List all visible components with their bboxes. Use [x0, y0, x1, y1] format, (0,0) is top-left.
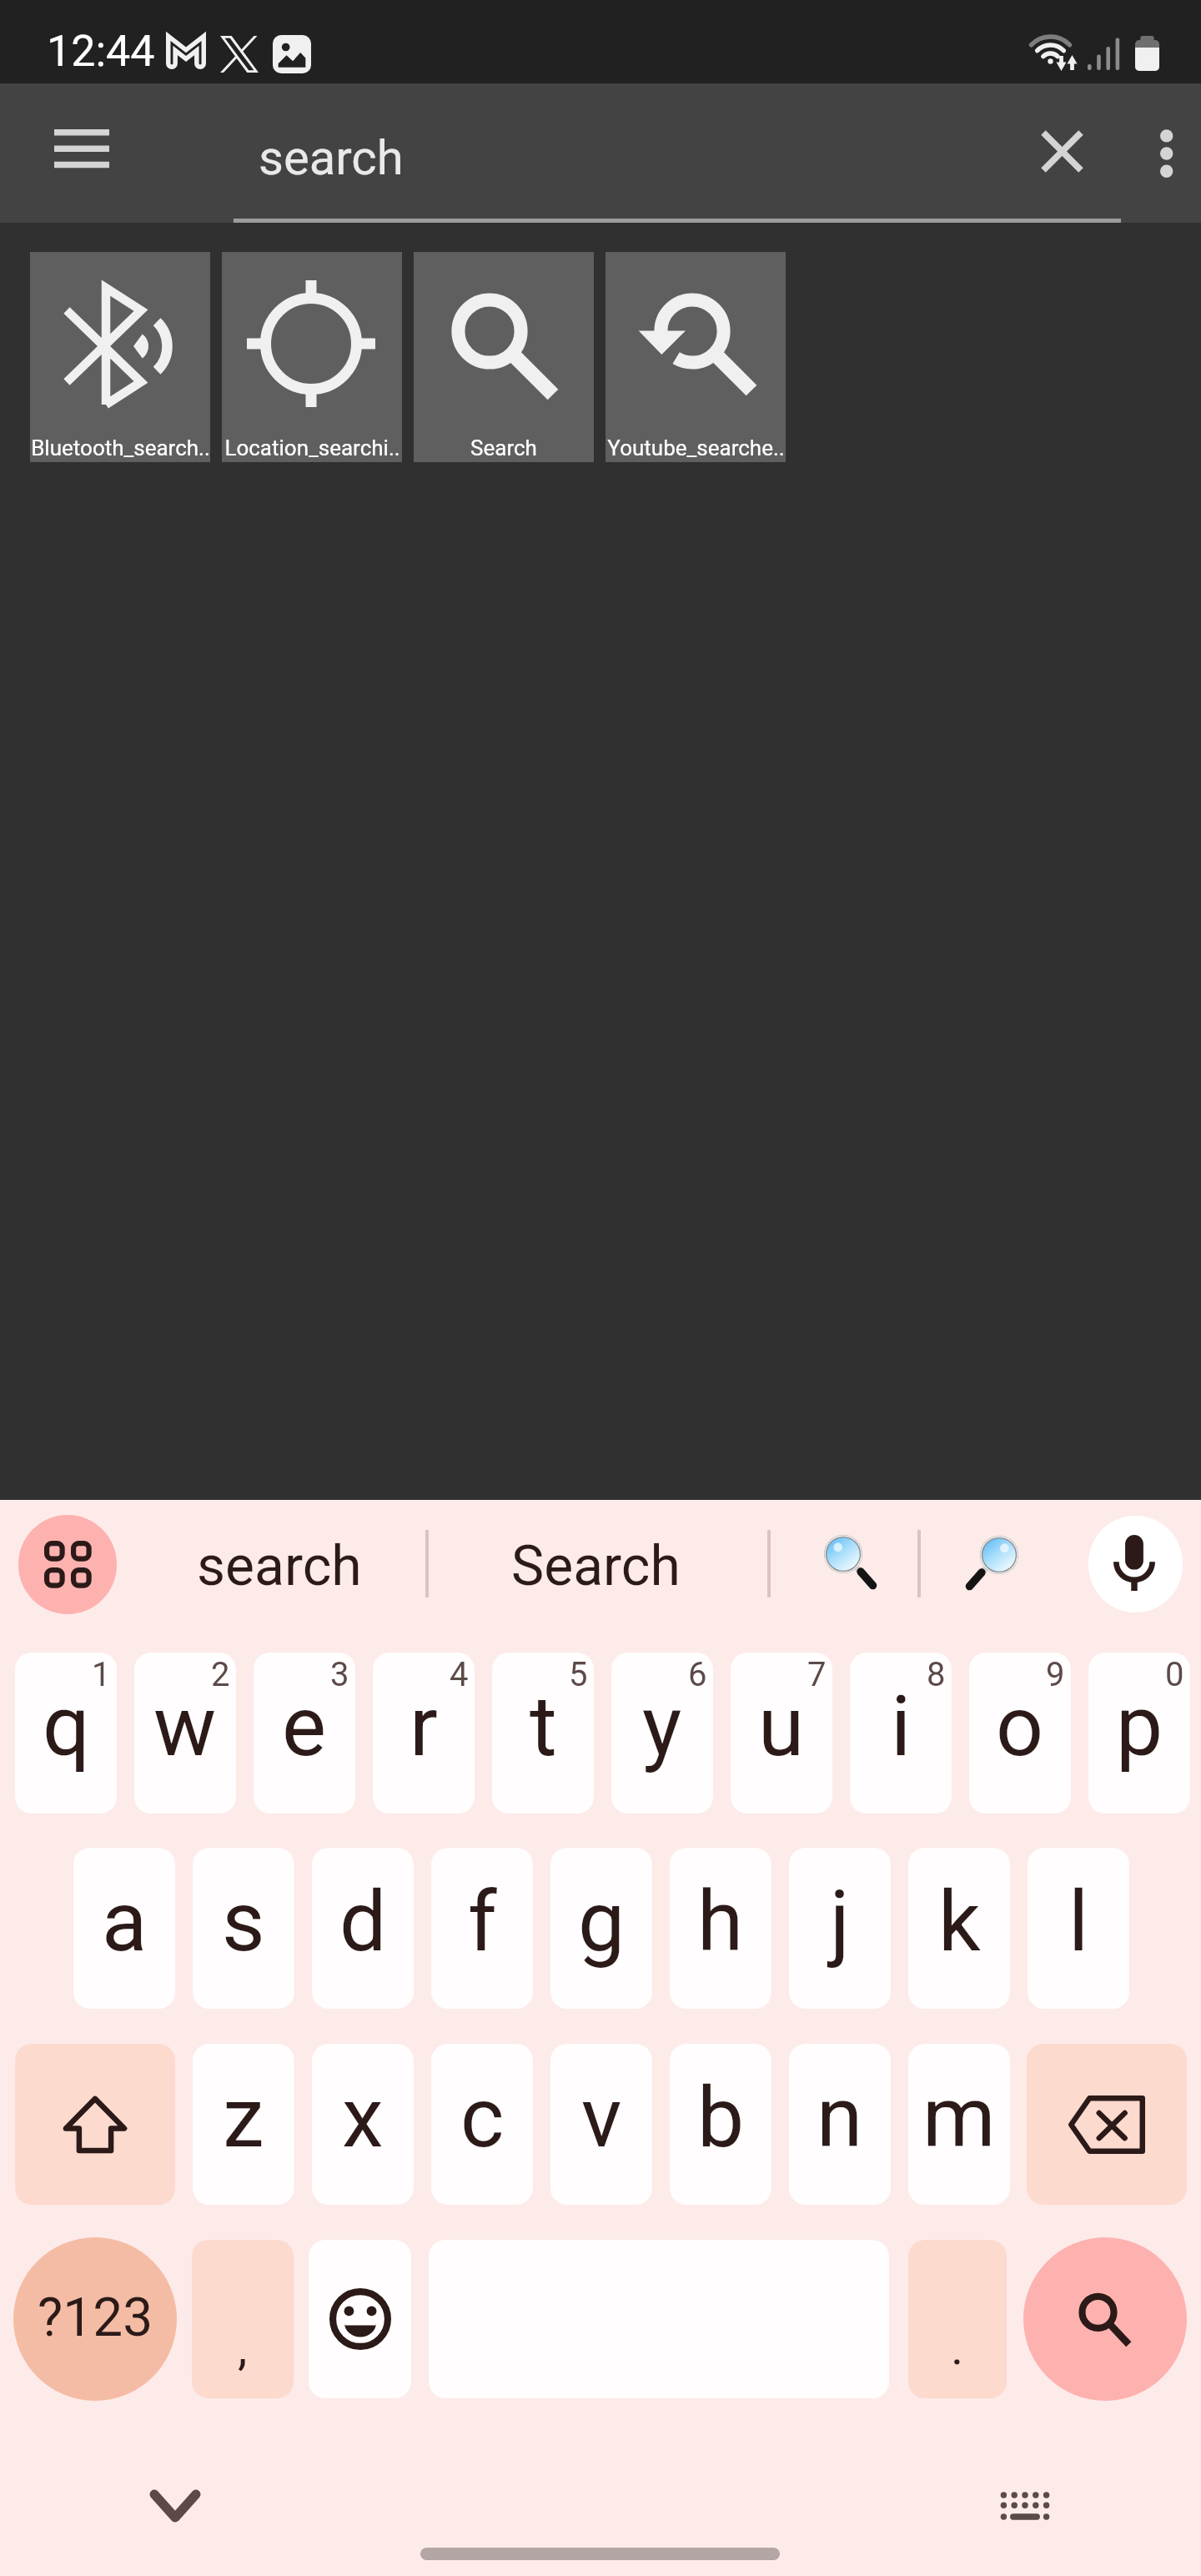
button[interactable]: Search suggestion — [792, 1512, 896, 1616]
button[interactable]: p — [1088, 1653, 1190, 1814]
staticText: 12:44 — [47, 26, 155, 77]
staticText: search — [259, 129, 404, 186]
button[interactable]: h — [670, 1848, 771, 2009]
button[interactable]: Emoji — [309, 2240, 411, 2398]
staticText: d — [339, 1873, 387, 1970]
staticText: 6 — [688, 1655, 707, 1694]
staticText: z — [223, 2069, 264, 2166]
staticText: u — [758, 1678, 805, 1775]
staticText: Search — [511, 1534, 681, 1598]
button[interactable]: o — [969, 1653, 1071, 1814]
button[interactable]: , — [192, 2240, 294, 2398]
staticText: 4 — [450, 1655, 469, 1694]
staticText: c — [460, 2069, 505, 2166]
staticText: i — [891, 1678, 912, 1775]
button[interactable]: search — [234, 96, 1018, 213]
staticText: . — [951, 2319, 964, 2376]
button[interactable]: Shift — [15, 2044, 175, 2205]
button[interactable]: q — [15, 1653, 117, 1814]
staticText: 0 — [1165, 1655, 1184, 1694]
staticText: Bluetooth_search.. — [31, 435, 210, 460]
staticText: 8 — [927, 1655, 946, 1694]
button[interactable]: Location_searchi.. — [222, 252, 402, 462]
button[interactable]: n — [789, 2044, 891, 2205]
button[interactable]: search — [133, 1502, 425, 1627]
staticText: y — [642, 1678, 682, 1775]
button[interactable]: Clear search — [1022, 111, 1103, 193]
staticText: search — [197, 1534, 362, 1598]
button[interactable]: v — [550, 2044, 652, 2205]
staticText: Youtube_searche.. — [607, 435, 785, 460]
button[interactable]: Search — [414, 252, 594, 462]
staticText: a — [102, 1873, 148, 1970]
staticText: x — [342, 2069, 384, 2166]
button[interactable]: Change keyboard — [975, 2456, 1075, 2556]
button[interactable]: f — [431, 1848, 533, 2009]
button[interactable]: Voice input — [1088, 1516, 1183, 1613]
button[interactable]: m — [908, 2044, 1010, 2205]
staticText: 7 — [807, 1655, 827, 1694]
staticText: 9 — [1046, 1655, 1065, 1694]
button[interactable]: Backspace — [1027, 2044, 1187, 2205]
staticText: l — [1068, 1873, 1089, 1970]
staticText: h — [697, 1873, 744, 1970]
button[interactable]: t — [492, 1653, 594, 1814]
button[interactable]: w — [134, 1653, 236, 1814]
button[interactable]: b — [670, 2044, 771, 2205]
button[interactable]: c — [431, 2044, 533, 2205]
button[interactable]: l — [1028, 1848, 1129, 2009]
staticText: r — [410, 1678, 438, 1775]
staticText: Location_searchi.. — [224, 435, 400, 460]
staticText: 2 — [211, 1655, 230, 1694]
staticText: 5 — [569, 1655, 588, 1694]
button[interactable]: s — [193, 1848, 294, 2009]
staticText: ?123 — [38, 2287, 153, 2349]
staticText: b — [697, 2069, 745, 2166]
staticText: s — [222, 1873, 265, 1970]
staticText: j — [830, 1873, 850, 1970]
button[interactable]: Bluetooth_search.. — [30, 252, 210, 462]
staticText: p — [1116, 1678, 1163, 1775]
staticText: q — [43, 1678, 90, 1775]
staticText: k — [938, 1873, 981, 1970]
button[interactable]: Search — [434, 1502, 757, 1627]
button[interactable]: Youtube_searche.. — [606, 252, 786, 462]
button[interactable]: r — [373, 1653, 475, 1814]
staticText: g — [578, 1873, 626, 1970]
button[interactable]: d — [312, 1848, 414, 2009]
button[interactable]: u — [731, 1653, 832, 1814]
button[interactable]: Navigation menu — [14, 113, 149, 193]
button[interactable]: y — [611, 1653, 713, 1814]
button[interactable]: Hide keyboard — [125, 2456, 225, 2556]
staticText: n — [817, 2069, 863, 2166]
button[interactable]: j — [789, 1848, 891, 2009]
button[interactable]: Search — [1023, 2237, 1187, 2401]
staticText: , — [238, 2319, 248, 2376]
button[interactable]: e — [254, 1653, 355, 1814]
staticText: o — [996, 1678, 1044, 1775]
staticText: 3 — [330, 1655, 349, 1694]
button[interactable]: Search emoji suggestion — [948, 1512, 1052, 1616]
button[interactable]: x — [312, 2044, 414, 2205]
button[interactable]: Keyboard toolbar — [18, 1515, 117, 1614]
staticText: f — [468, 1873, 497, 1970]
staticText: m — [922, 2069, 996, 2166]
staticText: w — [153, 1678, 217, 1775]
button[interactable]: ?123 — [13, 2237, 177, 2401]
button[interactable]: k — [908, 1848, 1010, 2009]
button[interactable]: g — [550, 1848, 652, 2009]
staticText: Search — [470, 435, 537, 460]
button[interactable]: i — [850, 1653, 952, 1814]
button[interactable]: z — [193, 2044, 294, 2205]
staticText: t — [530, 1678, 557, 1775]
staticText: v — [581, 2069, 622, 2166]
button[interactable]: a — [73, 1848, 175, 2009]
staticText: 1 — [92, 1655, 111, 1694]
staticText: e — [282, 1678, 327, 1775]
button[interactable]: . — [908, 2240, 1007, 2398]
button[interactable]: More options — [1127, 111, 1201, 185]
